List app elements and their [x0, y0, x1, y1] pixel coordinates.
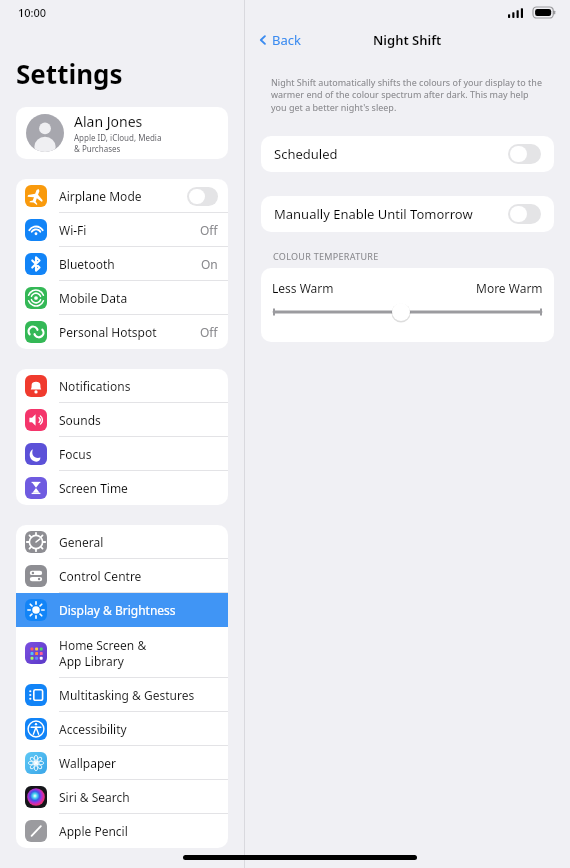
staticText: Apple Pencil	[59, 823, 128, 839]
button[interactable]: General	[16, 525, 228, 559]
staticText: Scheduled	[274, 145, 508, 163]
button[interactable]: Focus	[16, 437, 228, 471]
staticText: Back	[272, 31, 301, 49]
staticText: Control Centre	[59, 568, 142, 584]
staticText: Focus	[59, 446, 92, 462]
button[interactable]: Siri & Search	[16, 780, 228, 814]
button[interactable]: Toggle	[187, 187, 218, 206]
staticText: Off	[200, 222, 218, 238]
staticText: Home Screen &	[59, 637, 147, 653]
button[interactable]: Sounds	[16, 403, 228, 437]
staticText: Screen Time	[59, 480, 128, 496]
staticText: Sounds	[59, 412, 101, 428]
staticText: General	[59, 534, 104, 550]
staticText: Mobile Data	[59, 290, 128, 306]
button[interactable]: Wallpaper	[16, 746, 228, 780]
staticText: Night Shift	[373, 31, 442, 49]
staticText: Airplane Mode	[59, 188, 142, 204]
button[interactable]: Accessibility	[16, 712, 228, 746]
staticText: On	[201, 256, 218, 272]
button[interactable]: Screen Time	[16, 471, 228, 505]
staticText: Multitasking & Gestures	[59, 687, 195, 703]
button[interactable]: Notifications	[16, 369, 228, 403]
staticText: Wi-Fi	[59, 222, 87, 238]
button[interactable]: Multitasking & Gestures	[16, 678, 228, 712]
button[interactable]: Personal Hotspot	[16, 315, 228, 349]
button[interactable]: Manually Enable Until Tomorrow	[261, 196, 554, 232]
button[interactable]: Mobile Data	[16, 281, 228, 315]
staticText: App Library	[59, 653, 124, 669]
staticText: Night Shift automatically shifts the col…	[271, 76, 544, 114]
staticText: Apple ID, iCloud, Media	[74, 132, 162, 143]
staticText: Display & Brightness	[59, 602, 176, 618]
staticText: COLOUR TEMPERATURE	[273, 250, 379, 262]
staticText: More Warm	[476, 280, 543, 296]
button[interactable]: Wi-Fi	[16, 213, 228, 247]
button[interactable]: Control Centre	[16, 559, 228, 593]
button[interactable]: Home Screen &	[16, 627, 228, 678]
staticText: Settings	[16, 56, 123, 91]
button[interactable]: Bluetooth	[16, 247, 228, 281]
button[interactable]: Toggle	[508, 204, 541, 224]
staticText: Personal Hotspot	[59, 324, 157, 340]
staticText: Less Warm	[272, 280, 334, 296]
staticText: Off	[200, 324, 218, 340]
staticText: Siri & Search	[59, 789, 130, 805]
button[interactable]: Apple Pencil	[16, 814, 228, 848]
staticText: Wallpaper	[59, 755, 117, 771]
button[interactable]: Display & Brightness	[16, 593, 228, 627]
button[interactable]: Alan Jones	[16, 107, 228, 159]
staticText: Manually Enable Until Tomorrow	[274, 205, 508, 223]
button[interactable]: Airplane Mode	[16, 179, 228, 213]
staticText: Notifications	[59, 378, 131, 394]
button[interactable]: Colour temperature slider	[272, 303, 543, 321]
staticText: Alan Jones	[74, 112, 143, 131]
button[interactable]: Back	[257, 31, 301, 49]
staticText: & Purchases	[74, 143, 121, 154]
staticText: 10:00	[18, 5, 47, 20]
button[interactable]: Toggle	[508, 144, 541, 164]
staticText: Accessibility	[59, 721, 127, 737]
button[interactable]: Scheduled	[261, 136, 554, 172]
staticText: Bluetooth	[59, 256, 115, 272]
